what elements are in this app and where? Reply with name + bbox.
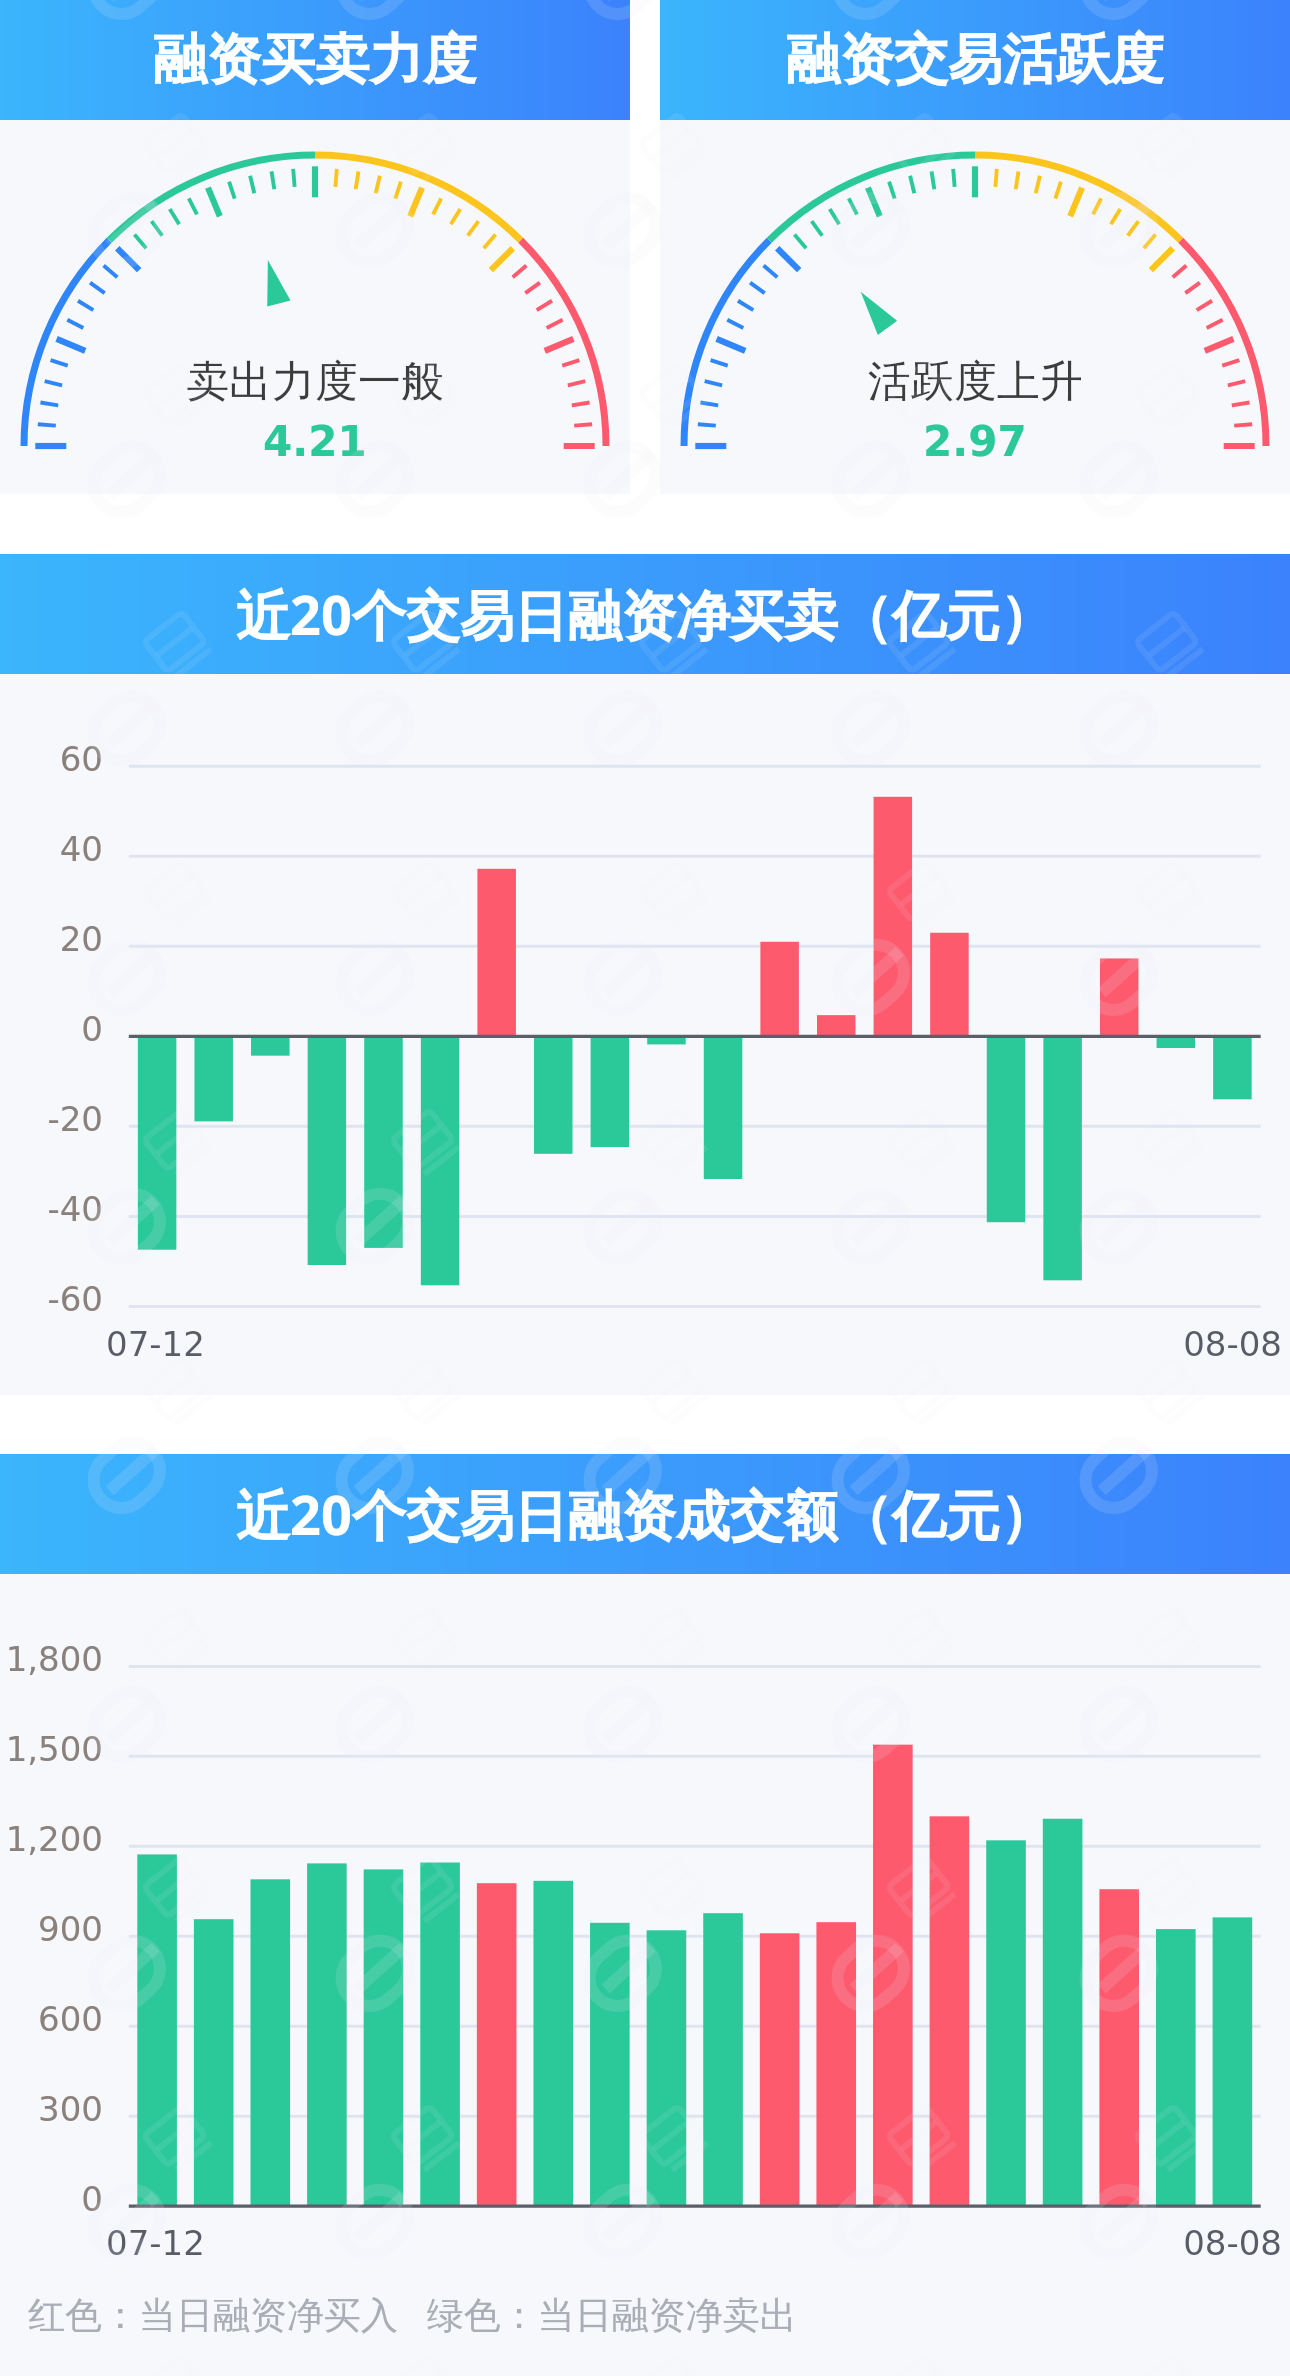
button[interactable]: 近20个交易日融资成交额柱状图	[0, 1574, 1290, 2376]
staticText: 0	[0, 1009, 103, 1049]
staticText: 近20个交易日融资成交额（亿元）	[236, 1477, 1054, 1551]
staticText: 活跃度上升	[868, 355, 1083, 409]
staticText: -40	[0, 1189, 103, 1229]
staticText: 08-08	[0, 2223, 1282, 2263]
button[interactable]: 近20个交易日融资成交额（亿元）	[0, 1454, 1290, 1574]
staticText: 900	[0, 1909, 103, 1949]
staticText: 1,200	[0, 1819, 103, 1859]
staticText: 2.97	[923, 417, 1027, 466]
button[interactable]: 近20个交易日融资净买卖（亿元）	[0, 554, 1290, 674]
staticText: 红色：当日融资净买入 绿色：当日融资净卖出	[28, 2288, 797, 2339]
staticText: 1,800	[0, 1639, 103, 1679]
staticText: 40	[0, 829, 103, 869]
staticText: 融资买卖力度	[153, 26, 477, 94]
staticText: 1,500	[0, 1729, 103, 1769]
button[interactable]: 近20个交易日融资净买卖柱状图	[0, 674, 1290, 1395]
staticText: 600	[0, 1999, 103, 2039]
button[interactable]: 卖出力度一般	[0, 120, 630, 494]
staticText: 300	[0, 2089, 103, 2129]
staticText: 0	[0, 2179, 103, 2219]
staticText: 07-12	[106, 2223, 205, 2263]
staticText: -20	[0, 1099, 103, 1139]
staticText: 融资交易活跃度	[786, 26, 1164, 94]
staticText: 60	[0, 739, 103, 779]
staticText: 07-12	[106, 1324, 205, 1364]
button[interactable]: 融资买卖力度	[0, 0, 630, 120]
staticText: 08-08	[0, 1324, 1282, 1364]
staticText: 20	[0, 919, 103, 959]
button[interactable]: 活跃度上升	[660, 120, 1290, 494]
staticText: 卖出力度一般	[186, 355, 444, 409]
button[interactable]: 融资交易活跃度	[660, 0, 1290, 120]
staticText: 4.21	[263, 417, 367, 466]
staticText: -60	[0, 1279, 103, 1319]
staticText: 近20个交易日融资净买卖（亿元）	[236, 577, 1054, 651]
